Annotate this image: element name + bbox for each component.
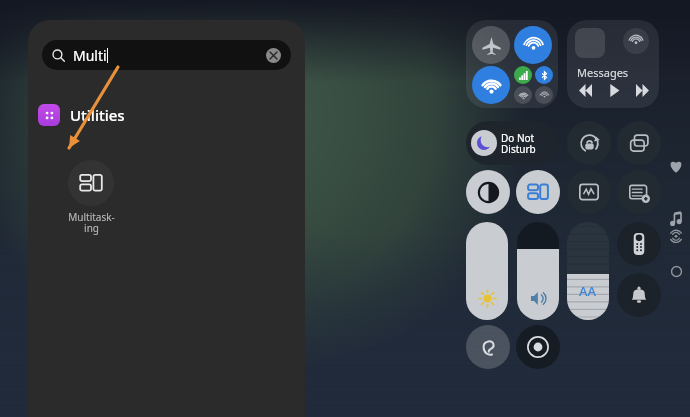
button[interactable]: Quick note: [617, 170, 661, 214]
button[interactable]: Hearing: [466, 325, 510, 369]
staticText: Multitask- ing: [68, 210, 115, 235]
button[interactable]: Apple TV Remote: [617, 222, 661, 266]
button[interactable]: Hotspot: [514, 86, 532, 104]
button[interactable]: Next track: [636, 84, 649, 97]
staticText: Utilities: [70, 105, 125, 125]
button[interactable]: Wi-Fi: [472, 66, 510, 104]
button[interactable]: Rotation lock: [567, 121, 611, 165]
button[interactable]: Play: [608, 84, 621, 97]
button[interactable]: Utilities: [38, 104, 125, 126]
button[interactable]: Multitask- ing: [66, 160, 116, 235]
button[interactable]: Music: [669, 212, 684, 227]
button[interactable]: Do Not Disturb: [466, 121, 558, 165]
button[interactable]: Cellular data: [514, 26, 552, 64]
button[interactable]: Text size: [567, 222, 609, 320]
staticText: AA: [579, 282, 597, 300]
button[interactable]: AirDrop: [535, 86, 553, 104]
button[interactable]: AirPlay: [623, 28, 649, 54]
button[interactable]: Alarm: [617, 273, 661, 317]
button[interactable]: Dark mode: [466, 170, 510, 214]
button[interactable]: Favorite: [668, 158, 684, 174]
button[interactable]: Cell signal: [514, 66, 532, 84]
staticText: Multi: [73, 46, 107, 65]
button[interactable]: AirPlay: [567, 20, 659, 108]
button[interactable]: Screen record: [516, 325, 560, 369]
button[interactable]: Volume: [517, 222, 559, 320]
button[interactable]: Previous track: [579, 84, 592, 97]
button[interactable]: Cast: [668, 228, 684, 244]
staticText: Messages: [577, 65, 629, 80]
button[interactable]: Bluetooth: [535, 66, 553, 84]
staticText: Do Not Disturb: [501, 131, 536, 156]
button[interactable]: More controls: [671, 266, 682, 277]
button[interactable]: Multitasking: [516, 170, 560, 214]
button[interactable]: Multi: [42, 40, 291, 70]
button[interactable]: Screen recording: [567, 170, 611, 214]
button[interactable]: Airplane mode: [472, 26, 510, 64]
button[interactable]: Clear search: [266, 48, 281, 63]
button[interactable]: Screen mirroring: [617, 121, 661, 165]
button[interactable]: Brightness: [466, 222, 508, 320]
